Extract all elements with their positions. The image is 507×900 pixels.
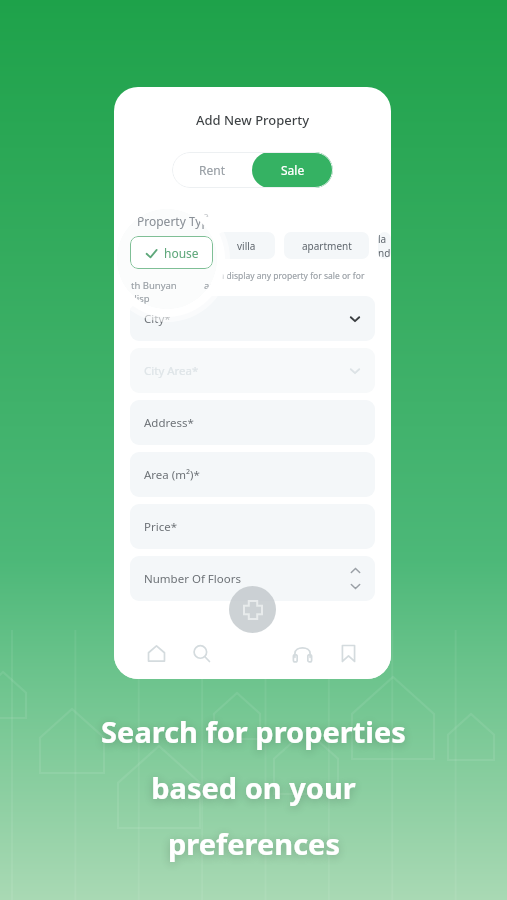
button[interactable]: Price* bbox=[130, 504, 375, 549]
button[interactable]: Bookmarks bbox=[325, 627, 371, 679]
button[interactable]: Home bbox=[134, 627, 179, 679]
button[interactable]: Search bbox=[179, 627, 224, 679]
button[interactable]: Area (m²)* bbox=[130, 452, 375, 497]
staticText: based on your bbox=[151, 768, 356, 807]
staticText: Address* bbox=[144, 415, 194, 431]
staticText: house bbox=[168, 239, 197, 253]
staticText: City Area* bbox=[144, 363, 199, 379]
staticText: Property Type bbox=[137, 213, 216, 229]
button[interactable]: Add property bbox=[229, 586, 276, 633]
button[interactable]: villa bbox=[217, 232, 275, 259]
staticText: City* bbox=[144, 311, 171, 327]
button[interactable]: City* bbox=[130, 296, 375, 341]
button[interactable]: house bbox=[140, 232, 208, 259]
button[interactable]: apartment bbox=[284, 232, 369, 259]
staticText: Add New Property bbox=[196, 111, 310, 129]
staticText: With Bunyan you can display any property… bbox=[140, 270, 365, 282]
staticText: th Bunyan an disp bbox=[131, 279, 217, 305]
staticText: Search for properties bbox=[101, 712, 406, 751]
button[interactable]: Address* bbox=[130, 400, 375, 445]
staticText: Number Of Floors bbox=[144, 571, 241, 587]
button[interactable]: land bbox=[378, 232, 391, 259]
staticText: land bbox=[378, 232, 391, 259]
button[interactable]: Number Of Floors bbox=[130, 556, 375, 601]
staticText: villa bbox=[237, 239, 256, 253]
staticText: apartment bbox=[302, 239, 352, 253]
button[interactable]: house bbox=[130, 236, 213, 269]
staticText: preferences bbox=[168, 824, 340, 863]
staticText: Price* bbox=[144, 519, 178, 535]
button[interactable]: Rent bbox=[172, 152, 252, 188]
button[interactable]: Sale bbox=[252, 152, 333, 188]
staticText: Sale bbox=[281, 162, 305, 178]
staticText: house bbox=[164, 245, 199, 261]
staticText: Area (m²)* bbox=[144, 467, 200, 483]
button[interactable]: Support bbox=[279, 627, 325, 679]
staticText: Rent bbox=[199, 162, 225, 178]
staticText: Property Type bbox=[140, 209, 209, 223]
